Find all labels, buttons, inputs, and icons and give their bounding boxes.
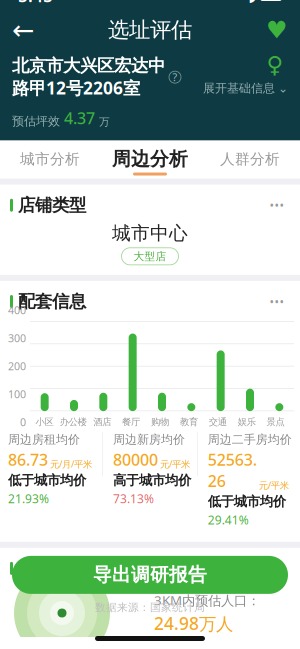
staticText: •••: [269, 197, 284, 213]
button[interactable]: 返回: [4, 13, 42, 47]
staticText: 展开基础信息: [203, 81, 275, 96]
button[interactable]: 周边分析: [100, 141, 200, 179]
staticText: 人群分析: [220, 150, 280, 168]
staticText: 城市中心: [112, 222, 188, 245]
button[interactable]: 展开基础信息: [203, 75, 288, 96]
button[interactable]: 说明: [169, 71, 181, 83]
staticText: 5:45: [18, 0, 53, 7]
staticText: 周边人口: [18, 558, 86, 579]
staticText: 86.73: [8, 449, 48, 470]
staticText: ♀: [266, 52, 283, 78]
staticText: 元/平米: [160, 458, 190, 470]
button[interactable]: 更多: [264, 196, 290, 214]
button[interactable]: 更多: [264, 559, 290, 577]
staticText: 北京市大兴区宏达中路甲12号2206室: [12, 55, 165, 99]
staticText: 低于城市均价: [8, 472, 86, 489]
staticText: 100: [8, 387, 26, 401]
staticText: 周边分析: [112, 148, 188, 170]
staticText: 24.98万人: [154, 612, 233, 635]
staticText: 400: [8, 303, 26, 317]
staticText: •••: [269, 294, 284, 309]
staticText: ?: [172, 70, 177, 84]
staticText: 交通: [209, 416, 227, 428]
staticText: 娱乐: [238, 416, 256, 428]
staticText: 酒店: [93, 416, 111, 428]
button[interactable]: 人群分析: [200, 141, 300, 179]
staticText: 4.37: [64, 107, 95, 128]
button[interactable]: 导出调研报告: [12, 556, 288, 594]
staticText: 200: [8, 359, 26, 373]
staticText: ♥: [266, 16, 288, 44]
staticText: 数据来源：国家统计局: [95, 601, 205, 614]
staticText: 高于城市均价: [113, 472, 191, 489]
staticText: 大型店: [133, 250, 166, 263]
staticText: 300: [8, 331, 26, 345]
staticText: 配套信息: [18, 291, 86, 312]
staticText: 景点: [267, 416, 285, 428]
staticText: 21.93%: [8, 490, 49, 506]
staticText: ◗: [248, 0, 256, 5]
staticText: 办公楼: [60, 416, 87, 428]
staticText: 餐厅: [122, 416, 140, 428]
staticText: 3KM内预估人口：: [154, 591, 260, 609]
staticText: 元/月/平米: [50, 458, 92, 470]
staticText: 选址评估: [108, 17, 192, 43]
staticText: 周边二手房均价: [208, 432, 292, 447]
staticText: 购物: [151, 416, 169, 428]
button[interactable]: 更多: [264, 292, 290, 310]
button[interactable]: 收藏: [258, 13, 296, 47]
staticText: 52563.26: [208, 449, 257, 491]
staticText: 80000: [113, 449, 158, 470]
staticText: 店铺类型: [18, 195, 86, 216]
staticText: 周边房租均价: [8, 432, 80, 447]
button[interactable]: 城市分析: [0, 141, 100, 179]
staticText: •••: [269, 560, 284, 576]
staticText: 29.41%: [208, 512, 249, 528]
staticText: ←: [12, 15, 34, 45]
staticText: 周边新房均价: [113, 432, 185, 447]
staticText: 导出调研报告: [93, 563, 207, 586]
button[interactable]: 定位: [262, 55, 288, 75]
staticText: 73.13%: [113, 490, 154, 506]
staticText: 城市分析: [20, 150, 80, 168]
staticText: 预估坪效: [12, 114, 60, 128]
staticText: 教育: [180, 416, 198, 428]
staticText: 0: [20, 415, 26, 429]
staticText: 元/平米: [259, 479, 289, 491]
staticText: ⌄: [278, 82, 288, 95]
staticText: 万: [99, 115, 110, 129]
staticText: 低于城市均价: [208, 493, 286, 510]
staticText: 小区: [35, 416, 53, 428]
